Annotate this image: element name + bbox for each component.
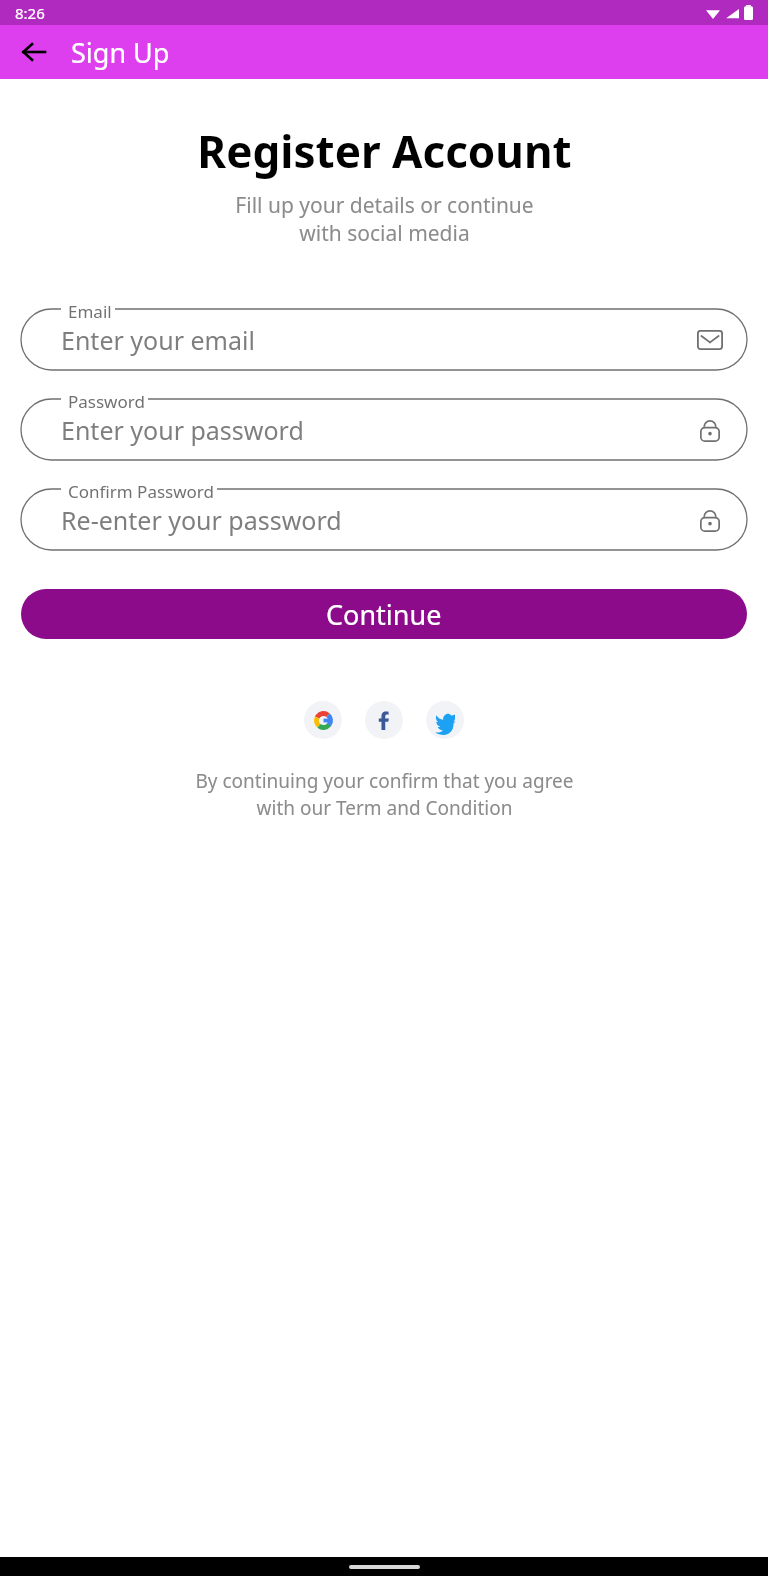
- button[interactable]: Back: [10, 28, 58, 76]
- button[interactable]: Password: [21, 399, 747, 460]
- button[interactable]: Sign up with Twitter: [426, 701, 464, 739]
- staticText: Enter your email: [61, 323, 255, 357]
- staticText: Re-enter your password: [61, 503, 342, 537]
- staticText: Continue: [326, 596, 442, 633]
- staticText: By continuing your confirm that you agre…: [195, 768, 574, 821]
- button[interactable]: Sign up with Google: [304, 701, 342, 739]
- button[interactable]: Email: [21, 309, 747, 370]
- staticText: Password: [68, 390, 145, 413]
- staticText: 8:26: [15, 3, 45, 23]
- staticText: Confirm Password: [68, 480, 214, 503]
- button[interactable]: Sign up with Facebook: [365, 701, 403, 739]
- button[interactable]: Confirm Password: [21, 489, 747, 550]
- staticText: Sign Up: [71, 34, 170, 71]
- staticText: Email: [68, 300, 112, 323]
- staticText: Enter your password: [61, 413, 304, 447]
- button[interactable]: Continue: [21, 589, 747, 639]
- staticText: Register Account: [197, 121, 572, 181]
- staticText: Fill up your details or continue with so…: [235, 191, 534, 247]
